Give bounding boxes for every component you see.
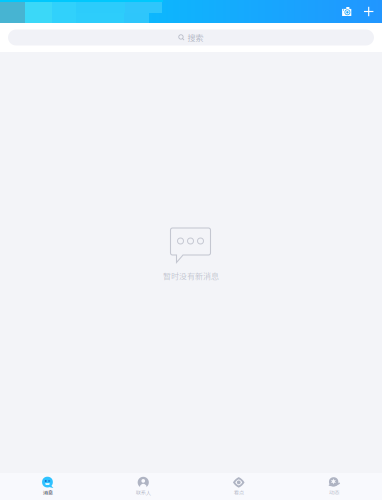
button[interactable]: 搜索 xyxy=(8,29,374,45)
button[interactable]: 消息 xyxy=(0,473,95,500)
staticText: 消息 xyxy=(43,489,53,496)
button[interactable]: 动态 xyxy=(286,473,382,500)
button[interactable]: 看点 xyxy=(191,473,286,500)
button[interactable]: Add xyxy=(358,0,380,23)
staticText: 暂时没有新消息 xyxy=(163,270,219,282)
staticText: 联系人 xyxy=(136,488,151,496)
staticText: 动态 xyxy=(329,488,339,496)
staticText: 搜索 xyxy=(188,32,204,43)
button[interactable]: Scan xyxy=(336,0,358,23)
button[interactable]: 联系人 xyxy=(95,473,191,500)
staticText: 看点 xyxy=(234,488,244,496)
